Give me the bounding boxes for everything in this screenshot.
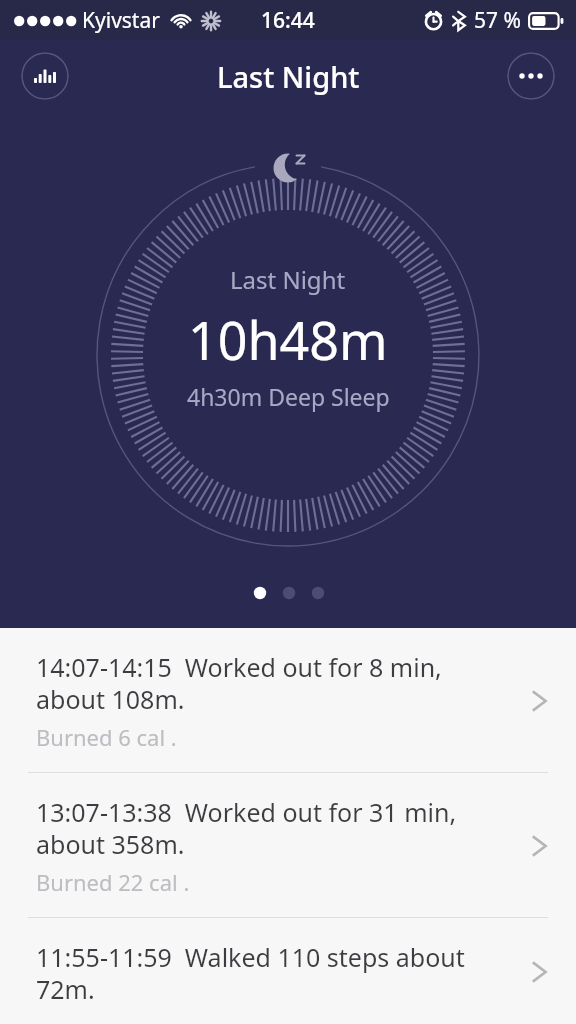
button[interactable]: 13:07-13:38 Worked out for 31 min, about… xyxy=(0,773,576,917)
staticText: Burned 6 cal . xyxy=(36,722,177,752)
staticText: 14:07-14:15 Worked out for 8 min, about … xyxy=(36,650,512,716)
button[interactable]: 11:55-11:59 Walked 110 steps about 72m. xyxy=(0,918,576,1024)
staticText: Last Night xyxy=(217,57,360,96)
button[interactable]: 14:07-14:15 Worked out for 8 min, about … xyxy=(0,628,576,772)
staticText: Kyivstar xyxy=(82,6,160,35)
staticText: 13:07-13:38 Worked out for 31 min, about… xyxy=(36,795,512,861)
button[interactable]: More options xyxy=(507,52,555,100)
button[interactable]: Statistics xyxy=(21,52,69,100)
staticText: 10h48m xyxy=(188,304,388,375)
staticText: Last Night xyxy=(230,263,346,296)
staticText: 16:44 xyxy=(261,6,315,35)
staticText: 4h30m Deep Sleep xyxy=(187,381,390,412)
staticText: 11:55-11:59 Walked 110 steps about 72m. xyxy=(36,940,512,1004)
staticText: Burned 22 cal . xyxy=(36,867,190,897)
staticText: 57 % xyxy=(474,6,521,35)
